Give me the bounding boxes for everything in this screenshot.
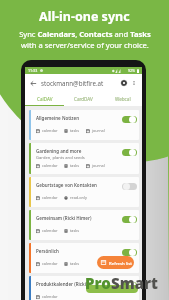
button[interactable]: Back xyxy=(29,79,38,88)
staticText: 11:33 xyxy=(28,68,38,73)
staticText: tasks xyxy=(70,128,80,133)
button[interactable]: Toggle sync xyxy=(122,215,137,223)
staticText: Smart xyxy=(111,273,158,293)
staticText: tasks xyxy=(70,228,80,233)
staticText: calendar xyxy=(42,163,58,168)
staticText: read-only xyxy=(70,195,87,200)
staticText: stockmann@bitfire.at xyxy=(41,79,104,87)
staticText: Produktkalender (Ricki) xyxy=(36,281,88,287)
button[interactable]: Toggle sync xyxy=(122,248,137,256)
staticText: 92% xyxy=(128,68,136,73)
staticText: journal xyxy=(92,128,105,133)
button[interactable]: Refresh list xyxy=(97,256,134,269)
staticText: Garden, plants and seeds xyxy=(36,155,85,161)
staticText: tasks xyxy=(70,261,80,266)
staticText: CardDAV xyxy=(74,96,93,102)
staticText: calendar xyxy=(42,261,58,266)
staticText: journal xyxy=(92,163,105,168)
staticText: Webcal xyxy=(115,96,131,102)
button[interactable]: Allgemeine Notizen xyxy=(29,110,139,140)
button[interactable]: Toggle sync xyxy=(122,182,137,190)
staticText: calendar xyxy=(42,294,58,299)
staticText: Sync Calendars, Contacts and Tasks xyxy=(19,29,151,39)
staticText: CalDAV xyxy=(37,96,53,102)
staticText: calendar xyxy=(42,128,58,133)
button[interactable]: Persönlich xyxy=(29,243,139,273)
button[interactable]: Produktkalender (Ricki) xyxy=(29,276,139,300)
staticText: Persönlich xyxy=(36,248,59,254)
staticText: with a server/service of your choice. xyxy=(21,40,149,50)
button[interactable]: Gardening and more xyxy=(29,143,139,174)
staticText: Pro xyxy=(85,273,111,293)
button[interactable]: More options xyxy=(129,78,139,88)
button[interactable]: Toggle sync xyxy=(122,148,137,156)
staticText: calendar xyxy=(42,195,58,200)
staticText: Allgemeine Notizen xyxy=(36,115,80,121)
button[interactable]: Geburtstage von Kontakten xyxy=(29,177,139,207)
staticText: calendar xyxy=(42,228,58,233)
staticText: Gardening and more xyxy=(36,148,82,154)
button[interactable]: CalDAV xyxy=(25,92,64,106)
button[interactable]: Settings xyxy=(119,78,129,88)
button[interactable]: Webcal xyxy=(103,92,142,106)
button[interactable]: Gemeinsam (Ricki Himer) xyxy=(29,210,139,240)
staticText: Refresh list xyxy=(109,260,132,266)
button[interactable]: Toggle sync xyxy=(122,281,137,289)
button[interactable]: Toggle sync xyxy=(122,115,137,123)
staticText: Geburtstage von Kontakten xyxy=(36,182,97,188)
button[interactable]: CardDAV xyxy=(64,92,103,106)
staticText: tasks xyxy=(70,163,80,168)
staticText: All-in-one sync xyxy=(39,8,130,25)
staticText: Gemeinsam (Ricki Himer) xyxy=(36,215,92,221)
